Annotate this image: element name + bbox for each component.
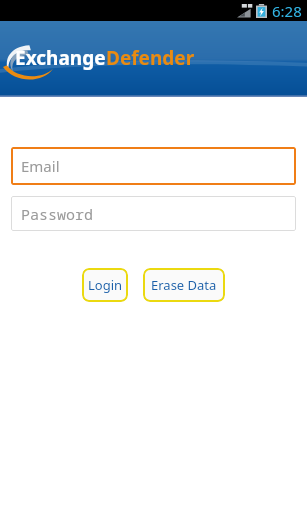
button[interactable]: Erase Data: [143, 268, 225, 302]
staticText: Defender: [106, 45, 195, 71]
button[interactable]: Password: [11, 196, 296, 231]
staticText: Password: [21, 204, 94, 224]
staticText: 6:28: [272, 1, 302, 21]
staticText: Email: [21, 156, 60, 176]
staticText: Erase Data: [151, 276, 217, 294]
other: Battery charging: [256, 4, 267, 18]
button[interactable]: Email: [11, 147, 296, 185]
other: 3G signal: [236, 4, 253, 18]
staticText: Exchange: [15, 45, 106, 71]
button[interactable]: Login: [82, 268, 128, 302]
staticText: Login: [88, 276, 123, 294]
